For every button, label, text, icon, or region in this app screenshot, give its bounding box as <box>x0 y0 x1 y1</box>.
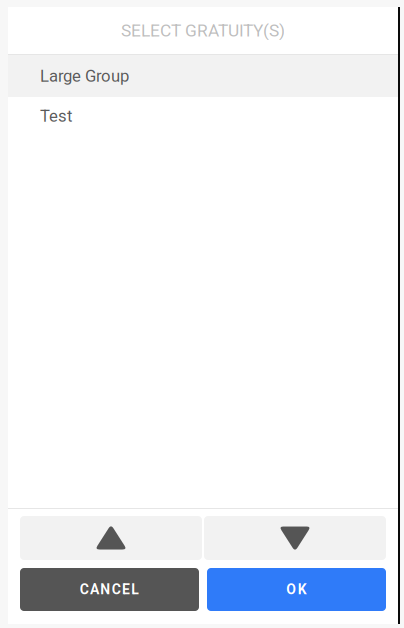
staticText: Large Group <box>40 66 129 86</box>
button[interactable]: Test <box>8 97 398 135</box>
button[interactable]: Scroll up <box>20 516 202 560</box>
staticText: SELECT GRATUITY(S) <box>121 20 285 41</box>
staticText: Test <box>40 106 72 126</box>
button[interactable]: CANCEL <box>20 568 199 611</box>
button[interactable]: Scroll down <box>204 516 386 560</box>
button[interactable]: OK <box>207 568 386 611</box>
button[interactable]: Large Group <box>8 55 398 97</box>
staticText: OK <box>286 581 307 598</box>
staticText: CANCEL <box>80 581 139 598</box>
